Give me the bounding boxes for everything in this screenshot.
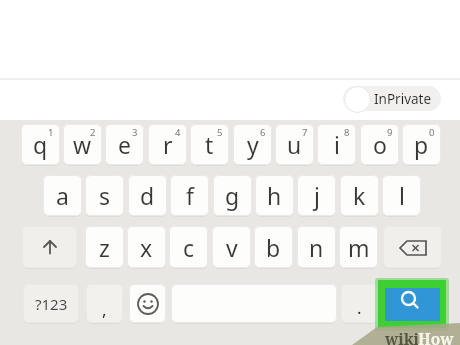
button[interactable]: u <box>275 124 314 165</box>
button[interactable]: . <box>341 284 378 323</box>
button[interactable]: s <box>85 175 124 216</box>
staticText: f <box>186 180 194 211</box>
staticText: j <box>314 180 320 211</box>
staticText: x <box>140 232 153 263</box>
staticText: 9 <box>387 126 393 139</box>
button[interactable]: y <box>233 124 272 165</box>
button[interactable]: w <box>63 124 102 165</box>
button[interactable]: v <box>212 226 251 268</box>
button[interactable]: n <box>297 226 336 268</box>
staticText: ?123 <box>35 294 68 314</box>
staticText: 8 <box>344 126 350 139</box>
staticText: t <box>205 129 214 160</box>
staticText: m <box>348 232 370 263</box>
staticText: r <box>163 129 173 160</box>
button[interactable]: , <box>86 284 123 323</box>
button[interactable]: o <box>360 124 399 165</box>
staticText: 4 <box>175 126 181 139</box>
staticText: q <box>33 129 48 160</box>
staticText: o <box>373 129 387 160</box>
button[interactable]: ?123 <box>23 284 79 323</box>
staticText: 5 <box>217 126 223 139</box>
button[interactable]: i <box>317 124 356 165</box>
button[interactable]: g <box>213 175 252 216</box>
button[interactable]: l <box>382 175 421 216</box>
staticText: 1 <box>48 126 54 139</box>
staticText: 3 <box>132 126 138 139</box>
button[interactable] <box>343 86 441 111</box>
staticText: 0 <box>429 126 435 139</box>
button[interactable]: x <box>127 226 166 268</box>
staticText: v <box>226 232 238 263</box>
staticText: 6 <box>260 126 266 139</box>
button[interactable]: f <box>170 175 209 216</box>
staticText: g <box>225 180 240 211</box>
button[interactable] <box>129 284 166 323</box>
button[interactable]: e <box>105 124 144 165</box>
staticText: b <box>266 232 281 263</box>
staticText: c <box>183 232 195 263</box>
staticText: wiki <box>385 328 420 345</box>
staticText: a <box>56 180 69 211</box>
staticText: u <box>287 129 302 160</box>
button[interactable] <box>383 226 442 268</box>
button[interactable] <box>385 288 440 321</box>
button[interactable]: k <box>340 175 379 216</box>
staticText: w <box>73 129 92 160</box>
button[interactable]: p <box>402 124 441 165</box>
button[interactable]: z <box>85 226 124 268</box>
button[interactable]: h <box>255 175 294 216</box>
staticText: 7 <box>302 126 308 139</box>
staticText: d <box>140 180 155 211</box>
button[interactable] <box>22 226 77 268</box>
staticText: . <box>357 296 362 319</box>
staticText: InPrivate <box>374 90 432 108</box>
staticText: , <box>102 298 107 321</box>
button[interactable]: q <box>21 124 60 165</box>
button[interactable]: d <box>128 175 167 216</box>
staticText: h <box>267 180 282 211</box>
staticText: p <box>414 129 429 160</box>
staticText: z <box>99 232 110 263</box>
button[interactable]: j <box>297 175 336 216</box>
staticText: s <box>99 180 111 211</box>
staticText: i <box>334 129 340 160</box>
staticText: n <box>309 232 324 263</box>
button[interactable]: r <box>148 124 187 165</box>
button[interactable]: c <box>169 226 208 268</box>
staticText: l <box>399 180 405 211</box>
button[interactable]: a <box>43 175 82 216</box>
staticText: e <box>118 129 131 160</box>
button[interactable]: b <box>254 226 293 268</box>
button[interactable]: t <box>190 124 229 165</box>
staticText: How <box>418 328 454 345</box>
button[interactable]: m <box>339 226 378 268</box>
staticText: 2 <box>90 126 96 139</box>
button[interactable] <box>171 284 337 323</box>
staticText: k <box>353 180 366 211</box>
staticText: y <box>247 129 259 160</box>
